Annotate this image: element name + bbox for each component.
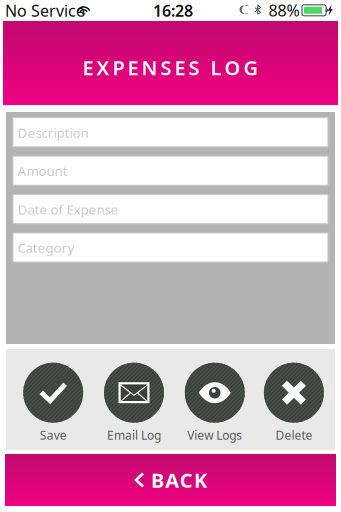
staticText: Save	[40, 427, 67, 443]
staticText: Description	[17, 124, 88, 141]
staticText: BACK	[151, 467, 207, 493]
staticText: 16:28	[153, 0, 193, 21]
staticText: Amount	[17, 162, 67, 180]
staticText: Delete	[275, 427, 312, 443]
button[interactable]: Amount	[13, 156, 328, 185]
button[interactable]: Description	[13, 118, 328, 147]
button[interactable]: Category	[13, 233, 328, 262]
staticText: E X P E N S E S L O G	[82, 54, 258, 81]
button[interactable]: Email Log	[94, 363, 174, 445]
staticText: Category	[17, 239, 74, 256]
staticText: Email Log	[107, 427, 161, 443]
button[interactable]: Save	[13, 363, 93, 445]
button[interactable]: View Logs	[175, 363, 255, 445]
button[interactable]: BACK	[5, 454, 336, 506]
staticText: Date of Expense	[17, 200, 118, 218]
staticText: No Service	[5, 0, 85, 21]
staticText: View Logs	[187, 427, 242, 443]
button[interactable]: Date of Expense	[13, 195, 328, 224]
staticText: 88%	[268, 0, 299, 21]
button[interactable]: Delete	[254, 363, 334, 445]
